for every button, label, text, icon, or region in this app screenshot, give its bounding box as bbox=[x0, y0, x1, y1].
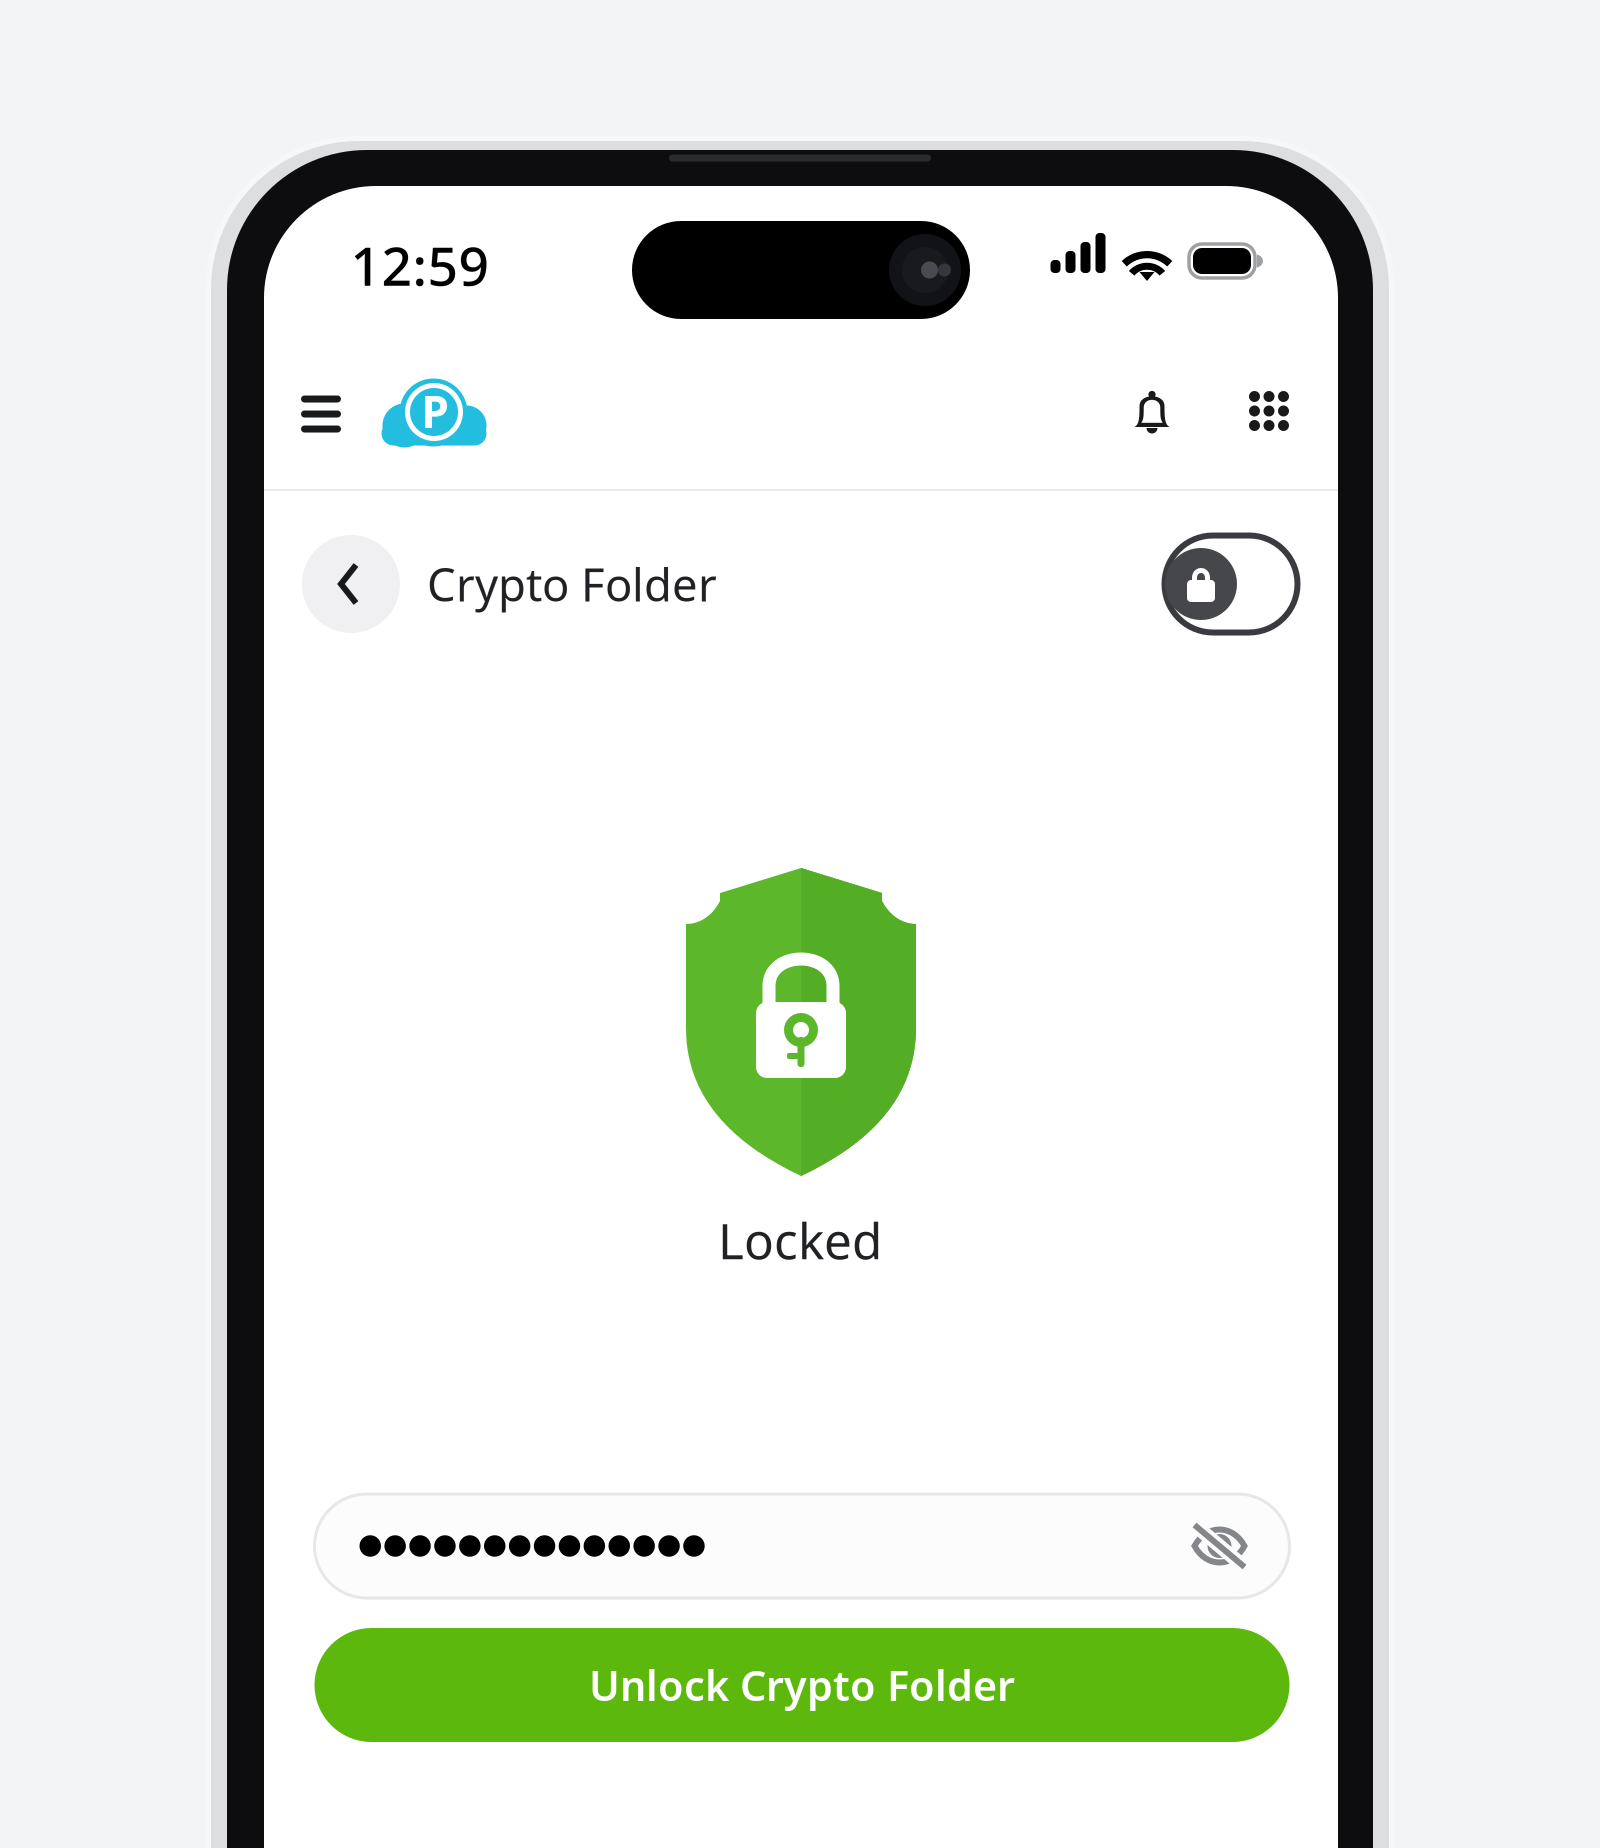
staticText: Crypto Folder bbox=[427, 554, 717, 614]
button[interactable]: Notifications bbox=[1117, 374, 1187, 450]
button[interactable]: Lock Crypto Folder bbox=[1164, 535, 1297, 632]
button[interactable]: Unlock Crypto Folder bbox=[314, 1628, 1289, 1742]
staticText: P bbox=[421, 382, 448, 440]
staticText: 12:59 bbox=[350, 230, 489, 300]
button[interactable]: Back bbox=[302, 535, 400, 633]
button[interactable]: Show password bbox=[1172, 1504, 1266, 1588]
button[interactable]: Menu bbox=[285, 373, 357, 454]
staticText: Locked bbox=[718, 1207, 882, 1273]
staticText: Unlock Crypto Folder bbox=[589, 1658, 1015, 1712]
button[interactable]: Apps bbox=[1233, 375, 1305, 447]
